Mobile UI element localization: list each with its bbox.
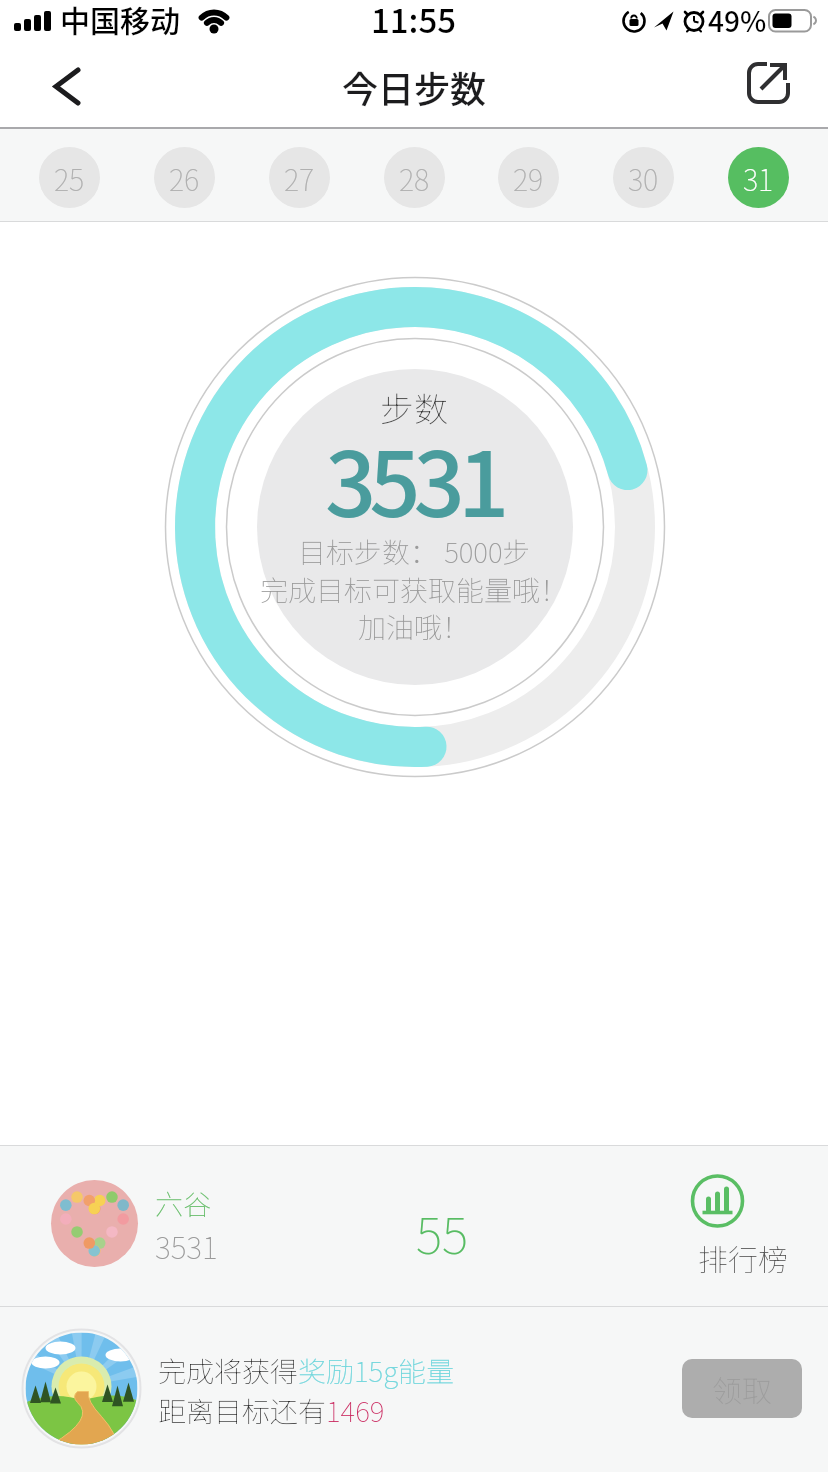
button[interactable]: 26 [154, 147, 215, 208]
staticText: 27 [284, 157, 315, 199]
button[interactable] [741, 60, 805, 124]
staticText: 49% [708, 0, 767, 34]
staticText: 25 [54, 157, 85, 199]
staticText: 目标步数： 5000步 [298, 531, 531, 572]
staticText: 六谷 [155, 1183, 212, 1224]
staticText: 55 [416, 1196, 469, 1256]
staticText: 今日步数 [342, 61, 487, 113]
staticText: 完成目标可获取能量哦！ [260, 569, 569, 610]
staticText: 中国移动 [60, 0, 180, 40]
button[interactable]: 31 [728, 147, 789, 208]
button[interactable]: 30 [613, 147, 674, 208]
staticText: 领取 [712, 1367, 772, 1410]
staticText: 加油哦！ [358, 606, 471, 647]
button[interactable]: 领取 [682, 1359, 802, 1418]
staticText: 26 [169, 157, 200, 199]
staticText: 距离目标还有1469 [158, 1390, 385, 1431]
staticText: 31 [743, 157, 774, 199]
staticText: 29 [513, 157, 544, 199]
staticText: 完成将获得奖励15g能量 [158, 1350, 455, 1391]
staticText: 28 [399, 157, 430, 199]
button[interactable]: 六谷 [0, 1145, 828, 1306]
staticText: 11:55 [371, 0, 457, 39]
button[interactable]: 25 [39, 147, 100, 208]
staticText: 步数 [380, 383, 448, 432]
staticText: 3531 [325, 413, 503, 543]
staticText: 排行榜 [698, 1236, 788, 1279]
button[interactable]: 29 [498, 147, 559, 208]
staticText: 30 [628, 157, 659, 199]
button[interactable]: 27 [269, 147, 330, 208]
button[interactable]: 28 [384, 147, 445, 208]
button[interactable]: 排行榜 [672, 1171, 812, 1281]
staticText: 3531 [155, 1224, 218, 1267]
button[interactable] [36, 64, 82, 110]
